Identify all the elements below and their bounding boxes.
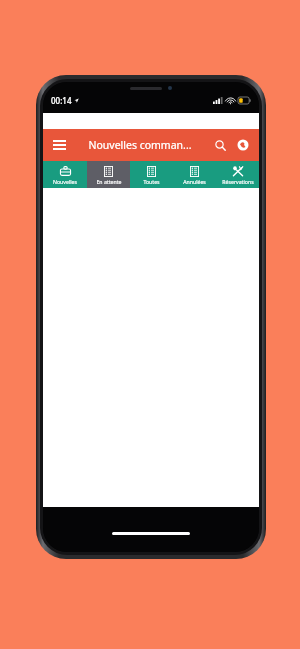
staticText: Nouvelles (53, 178, 77, 185)
staticText: Réservations (222, 178, 254, 185)
button[interactable]: Search (211, 133, 230, 157)
staticText: En attente (96, 178, 122, 185)
button[interactable]: Menu (50, 133, 68, 157)
button[interactable]: Toutes (130, 161, 173, 188)
button[interactable]: Annulées (173, 161, 216, 188)
staticText: Nouvelles comman... (88, 138, 192, 152)
staticText: Annulées (183, 178, 206, 185)
button[interactable]: Language (233, 133, 252, 157)
button[interactable]: En attente (87, 161, 130, 188)
staticText: 00:14 (51, 95, 72, 106)
staticText: Toutes (143, 178, 160, 185)
button[interactable]: Réservations (216, 161, 259, 188)
button[interactable]: Nouvelles (43, 161, 87, 188)
